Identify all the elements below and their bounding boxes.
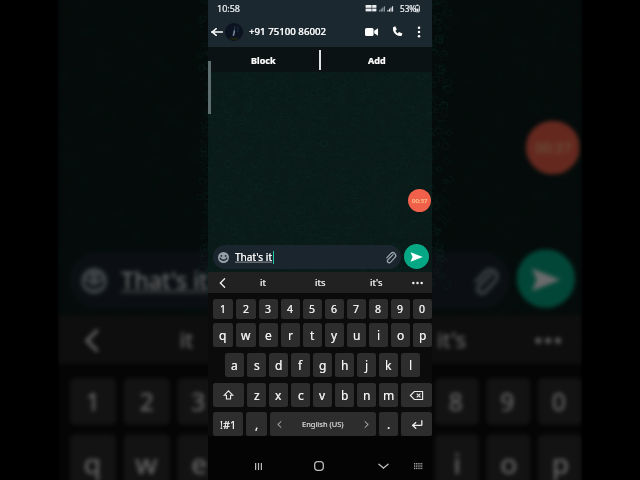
button[interactable]: 1 — [213, 299, 233, 319]
staticText: 0 — [552, 385, 568, 418]
button[interactable]: c — [291, 383, 310, 407]
button[interactable]: 3 — [259, 299, 278, 319]
staticText: Block — [251, 54, 276, 66]
button[interactable]: f — [291, 353, 310, 377]
button[interactable]: 2 — [236, 299, 256, 319]
button[interactable]: it — [135, 315, 238, 364]
button[interactable]: !#1 — [213, 412, 243, 436]
button[interactable]: Voice call — [386, 16, 408, 47]
button[interactable]: t — [280, 434, 325, 480]
button[interactable]: u — [383, 434, 428, 480]
button[interactable]: . — [379, 412, 398, 436]
staticText: w — [135, 444, 158, 480]
button[interactable]: , — [246, 412, 267, 436]
button[interactable]: m — [379, 383, 398, 407]
staticText: 2 — [243, 302, 250, 316]
button[interactable]: b — [335, 383, 354, 407]
button[interactable]: z — [247, 383, 266, 407]
button[interactable]: 5 — [280, 378, 325, 425]
button[interactable]: l — [401, 353, 420, 377]
staticText: 4 — [243, 385, 259, 418]
button[interactable]: q — [70, 434, 116, 480]
button[interactable]: Backspace — [401, 383, 432, 407]
button[interactable]: That's it — [70, 252, 509, 308]
button[interactable]: d — [269, 353, 288, 377]
button[interactable]: 5 — [303, 299, 322, 319]
button[interactable]: g — [313, 353, 332, 377]
button[interactable]: Change keyboard — [407, 450, 429, 480]
button[interactable]: w — [123, 434, 170, 480]
button[interactable]: Send — [517, 249, 575, 308]
button[interactable]: t — [303, 323, 322, 347]
button[interactable]: Block — [208, 47, 319, 72]
button[interactable]: r — [229, 434, 273, 480]
staticText: 00:37 — [412, 197, 428, 205]
button[interactable]: Shift — [213, 383, 244, 407]
button[interactable]: e — [177, 434, 222, 480]
button[interactable]: its — [268, 315, 371, 364]
button[interactable]: it's — [400, 315, 503, 364]
button[interactable]: 7 — [383, 378, 428, 425]
button[interactable]: Back — [208, 16, 225, 47]
button[interactable]: 8 — [369, 299, 388, 319]
staticText: z — [254, 387, 260, 403]
button[interactable]: j — [357, 353, 376, 377]
button[interactable]: i — [435, 434, 479, 480]
button[interactable]: 2 — [123, 378, 170, 425]
button[interactable]: 9 — [391, 299, 410, 319]
button[interactable]: 3 — [177, 378, 222, 425]
button[interactable]: i — [369, 323, 388, 347]
button[interactable]: Video call — [359, 16, 383, 47]
button[interactable]: 9 — [486, 378, 531, 425]
button[interactable]: e — [259, 323, 278, 347]
button[interactable]: That's it — [213, 245, 401, 269]
button[interactable]: p — [538, 434, 582, 480]
button[interactable]: q — [213, 323, 233, 347]
button[interactable]: Profile photo — [225, 23, 243, 41]
button[interactable]: 6 — [325, 299, 344, 319]
button[interactable]: u — [347, 323, 366, 347]
button[interactable]: o — [486, 434, 531, 480]
button[interactable]: 0 — [413, 299, 432, 319]
button[interactable]: w — [236, 323, 256, 347]
button[interactable]: x — [269, 383, 288, 407]
button[interactable]: 4 — [229, 378, 273, 425]
button[interactable]: y — [325, 323, 344, 347]
staticText: v — [319, 387, 326, 403]
button[interactable]: 1 — [70, 378, 116, 425]
button[interactable]: y — [332, 434, 376, 480]
button[interactable]: h — [335, 353, 354, 377]
button[interactable]: Recents — [244, 450, 272, 480]
button[interactable]: More suggestions — [519, 315, 575, 364]
button[interactable]: Previous suggestions — [58, 315, 123, 364]
staticText: y — [331, 327, 338, 343]
button[interactable]: o — [391, 323, 410, 347]
button[interactable]: Previous suggestions — [208, 272, 236, 293]
button[interactable]: 6 — [332, 378, 376, 425]
button[interactable]: 8 — [435, 378, 479, 425]
button[interactable]: k — [379, 353, 398, 377]
button[interactable]: Add — [321, 47, 432, 72]
staticText: a — [231, 357, 238, 373]
button[interactable]: it — [241, 272, 285, 293]
button[interactable]: Enter — [401, 412, 432, 436]
button[interactable]: it's — [354, 272, 398, 293]
button[interactable]: a — [225, 353, 244, 377]
button[interactable]: 7 — [347, 299, 366, 319]
button[interactable]: v — [313, 383, 332, 407]
button[interactable]: Home — [305, 450, 333, 480]
button[interactable]: More options — [410, 16, 428, 47]
button[interactable]: 4 — [281, 299, 300, 319]
button[interactable]: Send — [404, 244, 429, 269]
button[interactable]: s — [247, 353, 266, 377]
button[interactable]: Hide keyboard — [369, 450, 397, 480]
staticText: q — [219, 327, 227, 343]
button[interactable]: n — [357, 383, 376, 407]
staticText: 0 — [419, 302, 426, 316]
button[interactable]: p — [413, 323, 432, 347]
button[interactable]: its — [298, 272, 342, 293]
button[interactable]: r — [281, 323, 300, 347]
button[interactable]: Space — [270, 412, 376, 436]
button[interactable]: 0 — [538, 378, 582, 425]
button[interactable]: More suggestions — [405, 272, 429, 293]
